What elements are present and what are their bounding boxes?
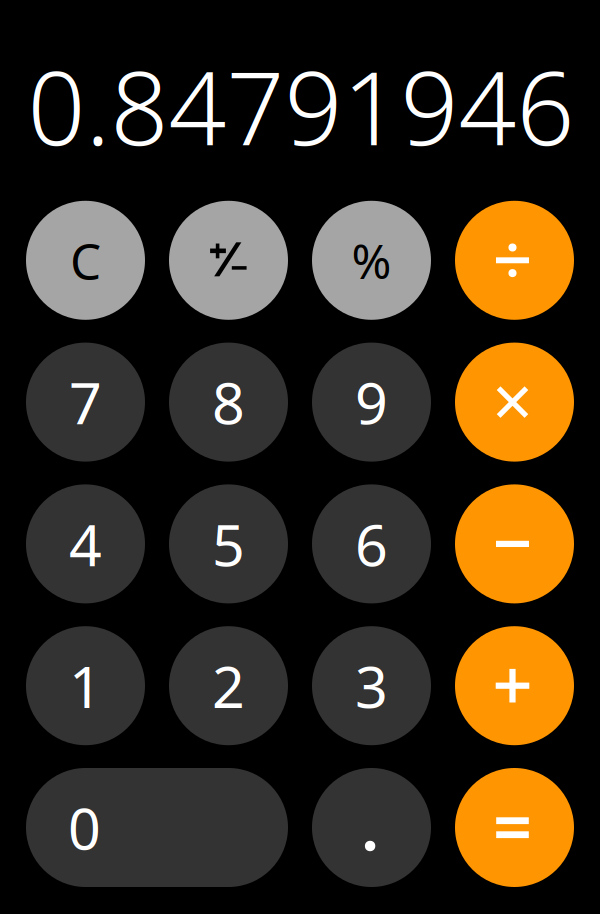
staticText: 5: [212, 506, 245, 582]
button[interactable]: Equals: [455, 768, 574, 887]
button[interactable]: 5: [169, 484, 288, 603]
staticText: C: [70, 227, 101, 293]
button[interactable]: 9: [312, 343, 431, 462]
staticText: 0: [68, 789, 101, 865]
button[interactable]: Multiply: [455, 343, 574, 462]
button[interactable]: 6: [312, 484, 431, 603]
button[interactable]: Plus: [455, 626, 574, 745]
staticText: 4: [69, 506, 102, 582]
button[interactable]: 4: [26, 484, 145, 603]
button[interactable]: Minus: [455, 484, 574, 603]
button[interactable]: 1: [26, 626, 145, 745]
button[interactable]: Plus minus: [169, 201, 288, 320]
button[interactable]: C: [26, 201, 145, 320]
staticText: 6: [355, 506, 388, 582]
button[interactable]: %: [312, 201, 431, 320]
staticText: 0.84791946: [27, 39, 574, 173]
staticText: 3: [355, 648, 388, 724]
button[interactable]: 2: [169, 626, 288, 745]
staticText: 7: [69, 364, 102, 440]
button[interactable]: 8: [169, 343, 288, 462]
staticText: %: [351, 228, 391, 292]
staticText: 1: [69, 648, 102, 724]
staticText: 9: [355, 364, 388, 440]
staticText: 2: [212, 648, 245, 724]
button[interactable]: Decimal point: [312, 768, 431, 887]
button[interactable]: 0: [26, 768, 288, 887]
button[interactable]: Divide: [455, 201, 574, 320]
button[interactable]: 3: [312, 626, 431, 745]
staticText: 8: [212, 364, 245, 440]
button[interactable]: 7: [26, 343, 145, 462]
